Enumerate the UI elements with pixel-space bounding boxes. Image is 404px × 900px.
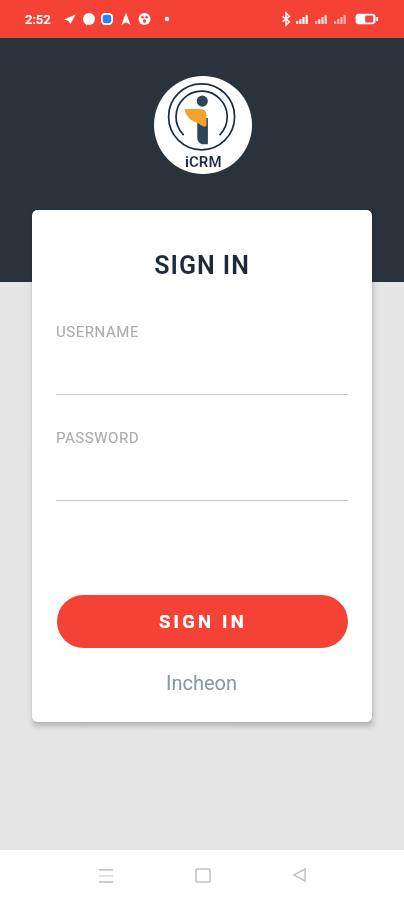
staticText: USERNAME <box>56 323 140 341</box>
staticText: PASSWORD <box>56 429 140 447</box>
button[interactable]: USERNAME <box>56 317 348 395</box>
button[interactable]: Menu <box>82 851 130 899</box>
staticText: SIGN IN <box>32 251 372 280</box>
button[interactable]: Incheon <box>32 671 372 694</box>
button[interactable]: Back <box>275 851 323 899</box>
button[interactable]: PASSWORD <box>56 423 348 501</box>
staticText: Incheon <box>166 671 238 694</box>
button[interactable]: SIGN IN <box>57 595 348 648</box>
staticText: SIGN IN <box>159 611 247 633</box>
button[interactable]: Recents <box>179 851 227 899</box>
staticText: 2:52 <box>25 12 51 27</box>
staticText: iCRM <box>185 153 222 171</box>
